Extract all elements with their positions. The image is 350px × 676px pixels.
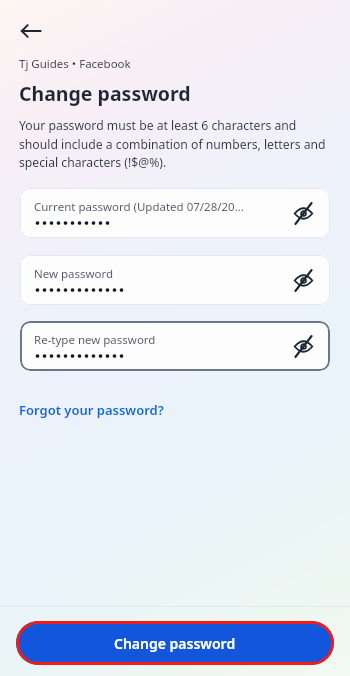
- button[interactable]: Show password: [286, 329, 320, 363]
- button[interactable]: Current password (Updated 07/28/20…: [20, 188, 330, 238]
- button[interactable]: Change password: [16, 621, 334, 665]
- staticText: Change password: [19, 80, 191, 107]
- staticText: Re-type new password: [34, 332, 156, 348]
- staticText: Current password (Updated 07/28/20…: [34, 199, 244, 215]
- button[interactable]: Show password: [286, 196, 320, 230]
- button[interactable]: Back: [12, 12, 50, 50]
- button[interactable]: Forgot your password?: [19, 401, 164, 419]
- button[interactable]: New password: [20, 255, 330, 305]
- staticText: Change password: [114, 634, 236, 653]
- staticText: Tj Guides • Facebook: [19, 56, 131, 72]
- staticText: Your password must be at least 6 charact…: [19, 117, 330, 170]
- staticText: Forgot your password?: [19, 401, 164, 419]
- button[interactable]: Re-type new password: [20, 321, 330, 371]
- staticText: New password: [34, 266, 114, 282]
- button[interactable]: Show password: [286, 263, 320, 297]
